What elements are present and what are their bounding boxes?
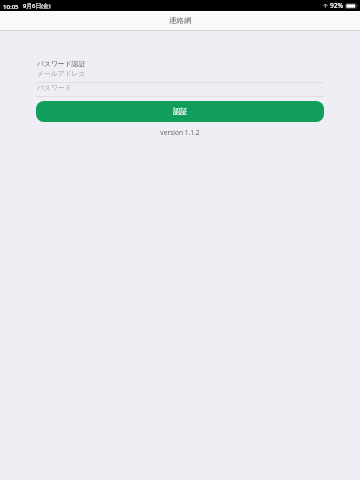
button[interactable]: パスワード — [36, 83, 324, 97]
staticText: 連絡網 — [169, 16, 192, 25]
other: Battery 92 percent — [345, 3, 358, 9]
button[interactable]: メールアドレス — [36, 68, 324, 83]
staticText: パスワード — [37, 83, 72, 92]
button[interactable]: 認証 — [36, 101, 324, 122]
staticText: 92% — [330, 1, 344, 10]
staticText: version 1.1.2 — [0, 128, 360, 137]
staticText: 認証 — [173, 107, 188, 116]
staticText: メールアドレス — [37, 69, 86, 78]
staticText: 10:05 — [3, 2, 19, 10]
staticText: 9月6日(金) — [23, 2, 51, 10]
other: Wi-Fi — [323, 3, 328, 8]
staticText: パスワード認証 — [37, 59, 86, 68]
